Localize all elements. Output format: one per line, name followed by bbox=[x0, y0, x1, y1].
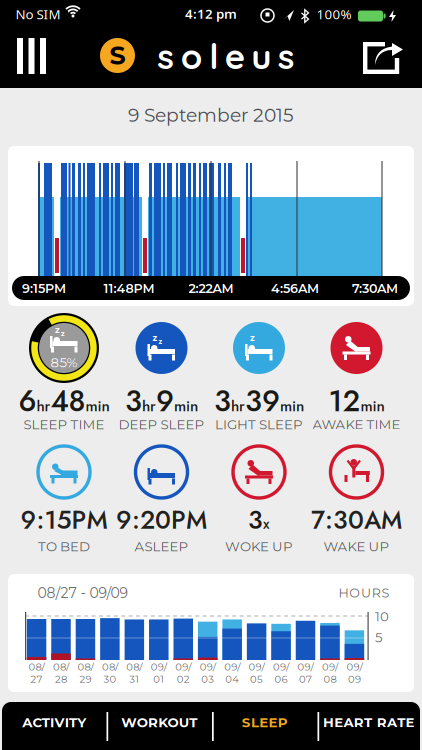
staticText: 3hr9min bbox=[125, 380, 198, 422]
staticText: 5 bbox=[375, 629, 383, 646]
staticText: 09/ bbox=[175, 661, 191, 673]
staticText: No SIM bbox=[15, 5, 60, 23]
staticText: 01 bbox=[153, 673, 164, 685]
staticText: 09/ bbox=[249, 661, 265, 673]
staticText: 3hr39min bbox=[214, 380, 304, 422]
staticText: z bbox=[55, 325, 60, 335]
button[interactable]: ACTIVITY bbox=[2, 702, 106, 743]
staticText: WORKOUT bbox=[121, 714, 197, 731]
staticText: 3x bbox=[248, 502, 270, 538]
staticText: 09/ bbox=[200, 661, 216, 673]
button[interactable]: SLEEP bbox=[212, 702, 317, 743]
staticText: 09/ bbox=[322, 661, 338, 673]
staticText: 08/ bbox=[126, 661, 142, 673]
staticText: 31 bbox=[129, 673, 139, 685]
staticText: HOURS bbox=[338, 585, 390, 601]
staticText: 08/ bbox=[29, 661, 45, 673]
staticText: z bbox=[61, 329, 65, 337]
staticText: 08/ bbox=[102, 661, 118, 673]
staticText: 10 bbox=[375, 608, 389, 625]
staticText: z bbox=[152, 333, 157, 343]
staticText: LIGHT SLEEP bbox=[215, 416, 303, 433]
staticText: 05 bbox=[250, 673, 263, 685]
staticText: HEART RATE bbox=[323, 714, 415, 731]
staticText: 08/ bbox=[77, 661, 93, 673]
staticText: DEEP SLEEP bbox=[118, 416, 204, 433]
staticText: 30 bbox=[103, 673, 116, 685]
staticText: 04 bbox=[225, 673, 239, 685]
staticText: 85% bbox=[50, 354, 77, 371]
staticText: z bbox=[158, 337, 162, 345]
staticText: 100% bbox=[316, 5, 351, 23]
button[interactable] bbox=[363, 42, 405, 74]
staticText: WAKE UP bbox=[323, 538, 389, 555]
staticText: AWAKE TIME bbox=[312, 416, 400, 433]
staticText: SLEEP bbox=[242, 714, 288, 731]
staticText: 09/ bbox=[297, 661, 313, 673]
staticText: TO BED bbox=[38, 538, 90, 555]
staticText: 09/ bbox=[151, 661, 167, 673]
staticText: 08 bbox=[323, 673, 336, 685]
staticText: 07 bbox=[299, 673, 312, 685]
staticText: 4:12 pm bbox=[185, 5, 237, 22]
staticText: 12min bbox=[328, 380, 384, 422]
staticText: 7:30AM bbox=[311, 502, 402, 538]
staticText: 08/27 - 09/09 bbox=[37, 584, 128, 602]
staticText: ACTIVITY bbox=[22, 714, 86, 731]
staticText: WOKE UP bbox=[225, 538, 293, 555]
button[interactable] bbox=[17, 38, 46, 74]
staticText: 9:15PM bbox=[20, 502, 107, 538]
staticText: 9:15PM bbox=[22, 281, 66, 296]
staticText: 28 bbox=[55, 673, 67, 685]
button[interactable]: HEART RATE bbox=[317, 702, 420, 743]
staticText: 9 September 2015 bbox=[128, 104, 294, 126]
staticText: z bbox=[250, 333, 255, 343]
staticText: 09/ bbox=[273, 661, 289, 673]
staticText: 2:22AM bbox=[188, 281, 233, 296]
staticText: 6hr48min bbox=[18, 380, 109, 422]
staticText: 4:56AM bbox=[271, 281, 319, 296]
staticText: soleus bbox=[157, 34, 295, 78]
staticText: 9:20PM bbox=[116, 502, 207, 538]
staticText: 03 bbox=[201, 673, 214, 685]
staticText: 11:48PM bbox=[103, 281, 154, 296]
staticText: SLEEP TIME bbox=[23, 416, 104, 433]
staticText: 09 bbox=[348, 673, 361, 685]
staticText: 06 bbox=[275, 673, 288, 685]
staticText: 02 bbox=[177, 673, 190, 685]
staticText: ASLEEP bbox=[134, 538, 188, 555]
staticText: S bbox=[109, 40, 125, 71]
button[interactable]: WORKOUT bbox=[106, 702, 212, 743]
staticText: 09/ bbox=[224, 661, 240, 673]
staticText: 29 bbox=[79, 673, 91, 685]
staticText: 7:30AM bbox=[352, 281, 398, 296]
staticText: 27 bbox=[31, 673, 43, 685]
staticText: 09/ bbox=[346, 661, 362, 673]
staticText: 08/ bbox=[53, 661, 69, 673]
